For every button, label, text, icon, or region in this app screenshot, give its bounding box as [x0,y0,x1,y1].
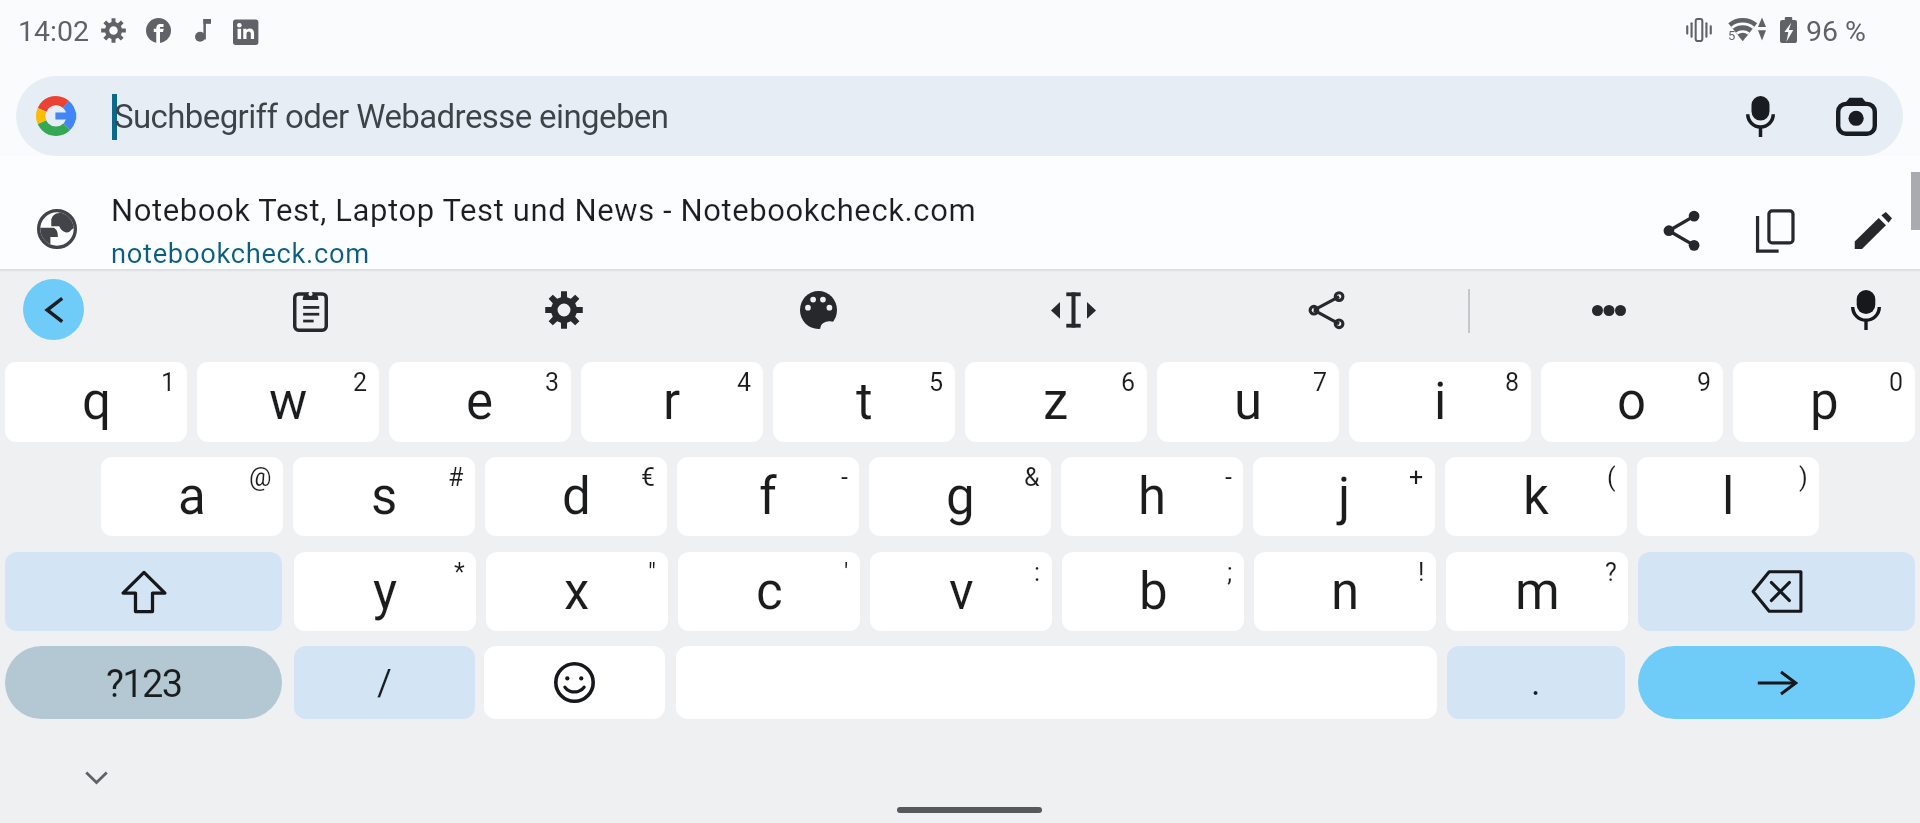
staticText: + [1409,463,1424,492]
button[interactable]: n [1254,552,1436,631]
staticText: x [564,562,590,622]
button[interactable]: x [486,552,668,631]
button[interactable]: Enter [1638,646,1915,719]
staticText: j [1338,467,1351,527]
staticText: z [1043,372,1069,432]
button[interactable]: h [1061,457,1243,536]
button[interactable]: l [1637,457,1819,536]
button[interactable]: Theme [787,279,849,341]
button[interactable]: c [678,552,860,631]
button[interactable]: Symbols [5,646,282,719]
staticText: ) [1799,463,1808,492]
staticText: & [1024,463,1040,492]
button[interactable]: d [485,457,667,536]
staticText: u [1234,372,1263,432]
staticText: Suchbegriff oder Webadresse eingeben [114,97,669,136]
staticText: p [1810,372,1839,432]
button[interactable]: Voice input [1835,279,1897,341]
button[interactable]: Share [1648,197,1714,263]
staticText: : [1034,558,1041,587]
staticText: ' [844,558,849,587]
button[interactable]: Emoji [484,646,665,719]
button[interactable]: u [1157,362,1339,442]
staticText: v [949,562,974,622]
button[interactable]: r [581,362,763,442]
button[interactable]: k [1445,457,1627,536]
button[interactable]: Hide keyboard [70,752,122,804]
staticText: g [946,467,975,527]
staticText: s [371,467,398,527]
staticText: 5 [1728,28,1736,43]
button[interactable]: Share [1295,279,1357,341]
button[interactable]: Voice search [1731,87,1789,145]
staticText: m [1515,562,1560,622]
button[interactable]: i [1349,362,1531,442]
button[interactable]: y [294,552,476,631]
button[interactable]: v [870,552,1052,631]
button[interactable]: Settings [533,279,595,341]
staticText: 14:02 [18,15,89,48]
staticText: Notebook Test, Laptop Test und News - No… [111,192,977,228]
button[interactable]: Shift [5,552,282,631]
staticText: ? [1605,558,1617,587]
button[interactable]: Text editing [1042,279,1104,341]
staticText: ( [1607,463,1616,492]
button[interactable]: m [1446,552,1628,631]
staticText: € [641,463,656,492]
staticText: e [466,372,494,432]
staticText: 3 [545,368,560,397]
button[interactable]: q [5,362,187,442]
button[interactable]: b [1062,552,1244,631]
button[interactable]: g [869,457,1051,536]
button[interactable]: Backspace [1638,552,1915,631]
staticText: notebookcheck.com [111,238,370,270]
staticText: 9 [1697,368,1712,397]
button[interactable]: e [389,362,571,442]
staticText: q [82,372,111,432]
staticText: ! [1418,558,1425,587]
button[interactable]: t [773,362,955,442]
button[interactable]: Clipboard [279,279,341,341]
button[interactable]: Edit [1840,197,1906,263]
staticText: f [759,467,777,527]
button[interactable]: w [197,362,379,442]
button[interactable]: More [1578,279,1640,341]
staticText: - [1225,463,1232,492]
staticText: t [856,372,873,432]
staticText: 0 [1889,368,1904,397]
button[interactable]: s [293,457,475,536]
staticText: d [562,467,591,527]
staticText: 6 [1121,368,1136,397]
button[interactable]: o [1541,362,1723,442]
staticText: n [1331,562,1360,622]
button[interactable]: Period [1447,646,1625,719]
button[interactable]: Back [23,279,84,340]
staticText: 7 [1313,368,1328,397]
button[interactable]: Suchbegriff oder Webadresse eingeben [16,76,1903,156]
staticText: " [648,558,657,587]
staticText: i [1434,372,1447,432]
staticText: * [454,558,465,587]
staticText: 1 [161,368,176,397]
button[interactable]: Google Lens [1827,87,1885,145]
staticText: 4 [737,368,752,397]
staticText: 5 [929,368,944,397]
staticText: a [178,467,206,527]
button[interactable]: Slash [294,646,475,719]
button[interactable]: a [101,457,283,536]
staticText: 2 [353,368,368,397]
staticText: ?123 [106,662,182,707]
staticText: r [663,372,681,432]
button[interactable]: f [677,457,859,536]
staticText: @ [249,463,272,492]
button[interactable]: Copy [1742,197,1808,263]
staticText: . [1531,662,1541,704]
staticText: o [1617,372,1647,432]
button[interactable]: z [965,362,1147,442]
button[interactable]: p [1733,362,1915,442]
button[interactable]: j [1253,457,1435,536]
staticText: # [448,463,464,492]
staticText: l [1722,467,1735,527]
button[interactable]: Notebook Test, Laptop Test und News - No… [0,156,1920,269]
